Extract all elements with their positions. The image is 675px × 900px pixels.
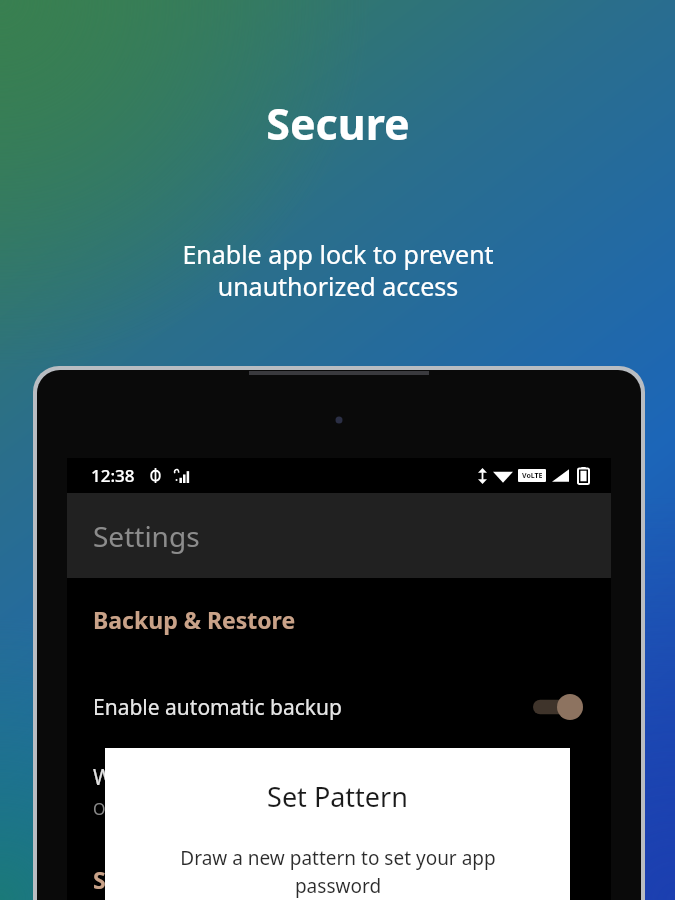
staticText: Only backup when connected bbox=[93, 798, 315, 820]
staticText: Secure bbox=[266, 94, 410, 153]
button[interactable]: Settings bbox=[67, 493, 611, 578]
staticText: Backup & Restore bbox=[93, 604, 296, 635]
button[interactable]: Enable automatic backup bbox=[67, 685, 611, 729]
staticText: Settings bbox=[93, 517, 200, 555]
staticText: Enable automatic backup bbox=[93, 693, 342, 722]
other: Enable automatic backup toggle bbox=[533, 694, 583, 720]
staticText: Wi-Fi only bbox=[93, 763, 189, 792]
staticText: Enable app lock to prevent unauthorized … bbox=[182, 237, 494, 303]
staticText: Set Pattern bbox=[267, 778, 408, 815]
staticText: 12:38 bbox=[91, 464, 135, 487]
staticText: Draw a new pattern to set your app passw… bbox=[180, 845, 496, 899]
staticText: VoLTE bbox=[522, 471, 543, 481]
staticText: Security bbox=[93, 864, 187, 895]
